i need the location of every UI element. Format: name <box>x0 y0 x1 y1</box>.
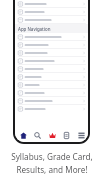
button[interactable]: Documents <box>59 128 73 142</box>
staticText: Syllabus, Grade Card, <box>11 151 93 162</box>
button[interactable]: List item <box>15 57 88 65</box>
staticText: Results, and More! <box>16 164 88 175</box>
button[interactable]: List item <box>15 73 88 81</box>
button[interactable]: Search <box>30 128 44 142</box>
button[interactable]: List item <box>15 16 88 24</box>
button[interactable]: List item <box>15 97 88 105</box>
button[interactable]: List item <box>15 33 88 41</box>
button[interactable]: List item <box>15 0 88 8</box>
button[interactable]: List item <box>15 81 88 89</box>
button[interactable]: More <box>74 128 88 142</box>
button[interactable]: List item <box>15 8 88 16</box>
button[interactable]: List item <box>15 49 88 57</box>
button[interactable]: List item <box>15 89 88 97</box>
button[interactable]: List item <box>15 41 88 49</box>
button[interactable]: List item <box>15 105 88 113</box>
button[interactable]: Featured <box>45 128 59 142</box>
button[interactable]: List item <box>15 65 88 73</box>
button[interactable]: Home <box>16 128 30 142</box>
staticText: App Navigation <box>18 26 51 32</box>
